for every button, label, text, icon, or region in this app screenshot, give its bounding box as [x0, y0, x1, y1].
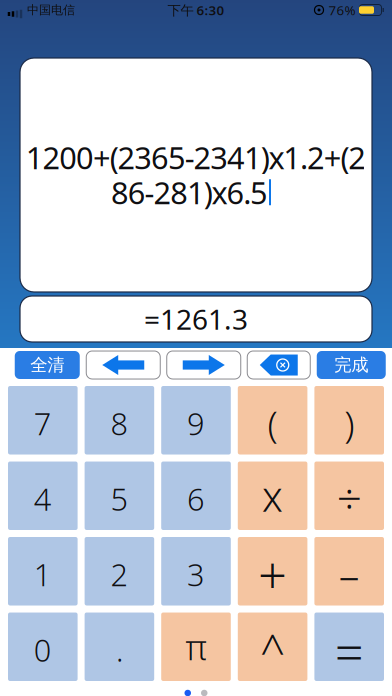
button[interactable]: 1 — [8, 537, 78, 605]
staticText: =1261.3 — [144, 300, 248, 338]
button[interactable]: 5 — [85, 461, 154, 530]
staticText: 4 — [34, 478, 52, 519]
button[interactable]: 光标左移 — [86, 351, 160, 379]
button[interactable]: = — [314, 612, 384, 681]
button[interactable]: 7 — [8, 386, 78, 454]
staticText: 8 — [110, 403, 128, 444]
button[interactable]: 光标右移 — [167, 351, 241, 379]
staticText: ^ — [260, 620, 285, 679]
button[interactable]: 4 — [8, 461, 78, 530]
staticText: 3 — [187, 554, 205, 595]
button[interactable]: 0 — [8, 612, 78, 681]
staticText: ( — [268, 398, 278, 448]
staticText: + — [258, 541, 287, 608]
staticText: 1 — [34, 554, 52, 595]
button[interactable]: π — [161, 612, 231, 681]
button[interactable]: ÷ — [314, 461, 384, 530]
staticText: 5 — [110, 478, 128, 519]
staticText: 6 — [187, 478, 205, 519]
staticText: 完成 — [334, 354, 368, 376]
staticText: 9 — [187, 403, 205, 444]
staticText: 1200+(2365-2341)x1.2+(2 — [26, 137, 366, 178]
button[interactable]: ( — [238, 386, 307, 454]
button[interactable]: 3 — [161, 537, 231, 605]
staticText: 2 — [110, 554, 128, 595]
staticText: = — [335, 618, 364, 685]
staticText: 全清 — [30, 354, 64, 376]
staticText: – — [339, 547, 360, 602]
staticText: 76% — [328, 1, 355, 19]
button[interactable]: 8 — [85, 386, 154, 454]
staticText: . — [116, 629, 123, 670]
button[interactable]: 全清 — [15, 351, 80, 379]
button[interactable]: ^ — [238, 612, 307, 681]
button[interactable]: x — [238, 461, 307, 530]
button[interactable]: 2 — [85, 537, 154, 605]
button[interactable]: 删除 — [247, 351, 310, 379]
button[interactable]: 完成 — [317, 351, 386, 379]
button[interactable]: + — [238, 537, 307, 605]
staticText: ) — [344, 398, 354, 448]
staticText: 中国电信 — [27, 3, 75, 17]
staticText: 下午 6:30 — [167, 1, 224, 19]
staticText: 7 — [34, 403, 52, 444]
button[interactable]: . — [85, 612, 154, 681]
button[interactable]: – — [314, 537, 384, 605]
button[interactable]: ) — [314, 386, 384, 454]
button[interactable]: 9 — [161, 386, 231, 454]
staticText: ÷ — [337, 468, 362, 527]
button[interactable]: 6 — [161, 461, 231, 530]
staticText: 0 — [34, 629, 52, 670]
staticText: 86-281)x6.5 — [111, 172, 268, 213]
staticText: x — [262, 468, 283, 523]
staticText: π — [185, 624, 206, 670]
